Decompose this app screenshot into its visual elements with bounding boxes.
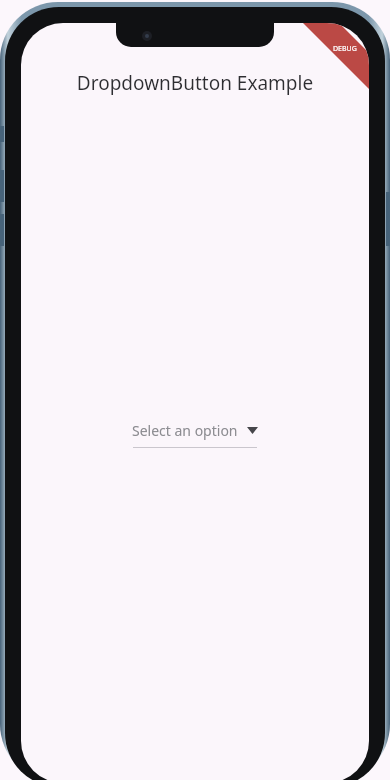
- staticText: Select an option: [132, 421, 238, 440]
- other: Open dropdown: [247, 427, 258, 434]
- button[interactable]: Select an option: [131, 421, 259, 440]
- staticText: DropdownButton Example: [21, 70, 369, 96]
- staticText: DEBUG: [333, 44, 357, 54]
